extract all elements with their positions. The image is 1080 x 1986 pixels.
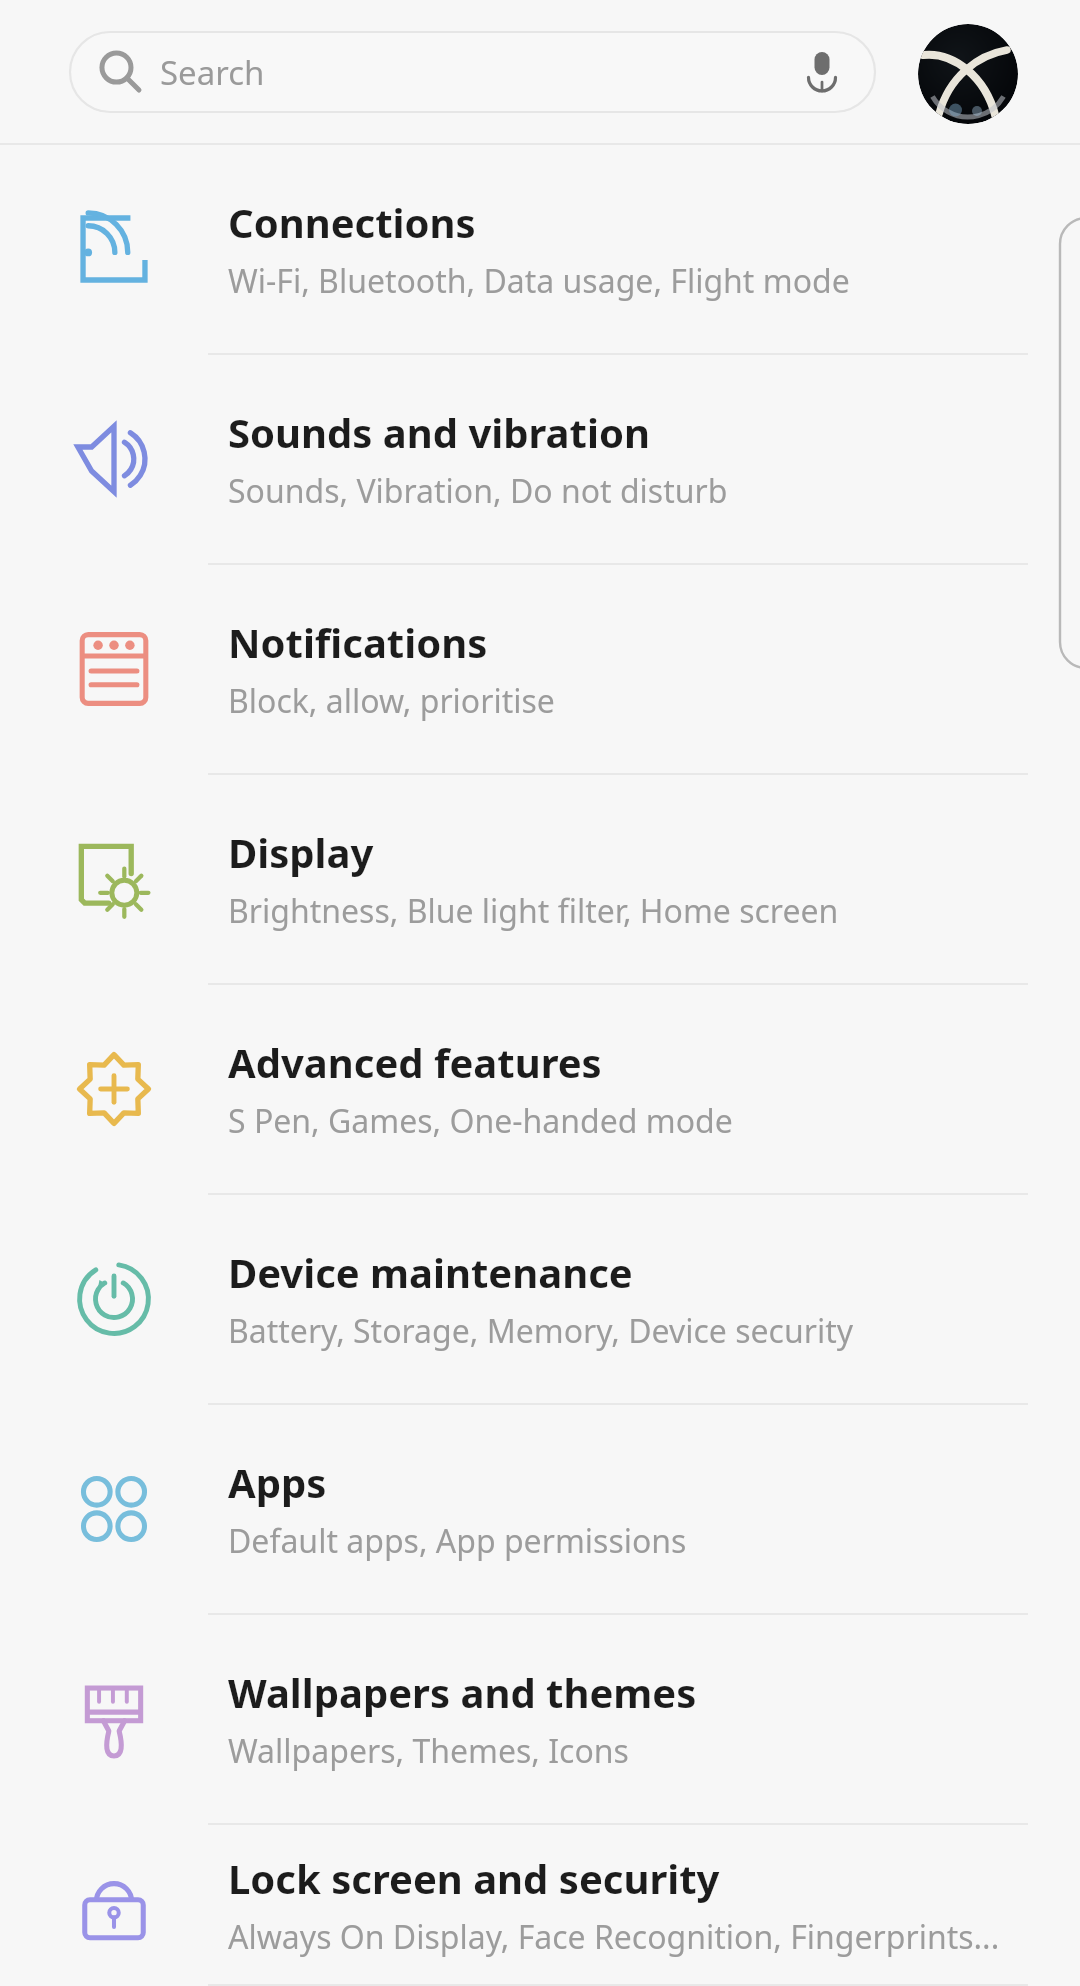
- staticText: Apps: [228, 1455, 327, 1509]
- staticText: Display: [228, 825, 374, 879]
- button[interactable]: Connections: [0, 145, 1080, 355]
- staticText: Default apps, App permissions: [228, 1519, 687, 1563]
- button[interactable]: Search: [70, 32, 875, 112]
- staticText: Brightness, Blue light filter, Home scre…: [228, 889, 839, 933]
- button[interactable]: Apps: [0, 1405, 1080, 1615]
- button[interactable]: Display: [0, 775, 1080, 985]
- staticText: Wi-Fi, Bluetooth, Data usage, Flight mod…: [228, 259, 850, 303]
- staticText: Lock screen and security: [228, 1851, 720, 1905]
- button[interactable]: Voice search: [797, 47, 847, 97]
- staticText: Notifications: [228, 615, 488, 669]
- staticText: Sounds, Vibration, Do not disturb: [228, 469, 728, 513]
- staticText: Connections: [228, 195, 476, 249]
- staticText: Advanced features: [228, 1035, 602, 1089]
- staticText: Always On Display, Face Recognition, Fin…: [228, 1915, 1000, 1959]
- staticText: Wallpapers and themes: [228, 1665, 697, 1719]
- button[interactable]: Advanced features: [0, 985, 1080, 1195]
- staticText: Block, allow, prioritise: [228, 679, 555, 723]
- staticText: Search: [160, 50, 265, 95]
- button[interactable]: Device maintenance: [0, 1195, 1080, 1405]
- button[interactable]: Sounds and vibration: [0, 355, 1080, 565]
- staticText: Wallpapers, Themes, Icons: [228, 1729, 629, 1773]
- staticText: Sounds and vibration: [228, 405, 650, 459]
- button[interactable]: Notifications: [0, 565, 1080, 775]
- button[interactable]: Account: [918, 24, 1018, 124]
- staticText: Battery, Storage, Memory, Device securit…: [228, 1309, 854, 1353]
- button[interactable]: Wallpapers and themes: [0, 1615, 1080, 1825]
- staticText: Device maintenance: [228, 1245, 633, 1299]
- staticText: S Pen, Games, One-handed mode: [228, 1099, 733, 1143]
- button[interactable]: Lock screen and security: [0, 1825, 1080, 1986]
